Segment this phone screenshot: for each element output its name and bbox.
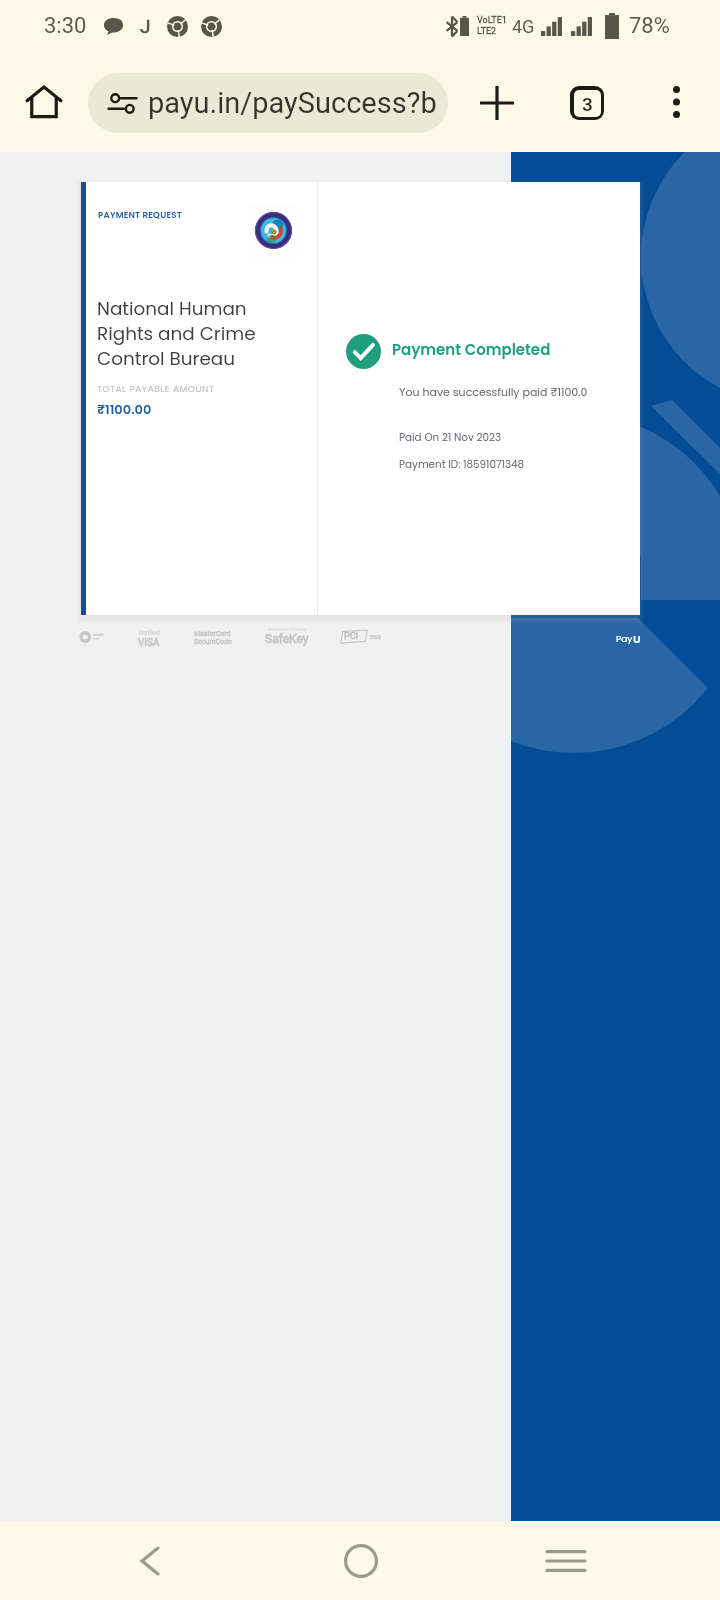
staticText: VISA xyxy=(138,637,160,649)
staticText: U xyxy=(633,631,641,646)
button[interactable]: New tab xyxy=(466,72,528,134)
button[interactable]: Home xyxy=(316,1521,406,1600)
staticText: PAYMENT REQUEST xyxy=(98,209,182,221)
staticText: Paid On 21 Nov 2023 xyxy=(399,430,502,445)
staticText: MasterCard xyxy=(194,630,231,638)
staticText: AMERICAN EXPRESS xyxy=(268,627,306,632)
staticText: PCI xyxy=(344,631,358,642)
button[interactable]: Open tabs xyxy=(556,72,618,134)
staticText: Payment ID: 18591071348 xyxy=(399,457,525,472)
staticText: You have successfully paid ₹1100.0 xyxy=(399,384,588,399)
staticText: National Human Rights and Crime Control … xyxy=(97,296,256,372)
button[interactable]: Recent apps xyxy=(521,1521,611,1600)
staticText: J xyxy=(140,15,151,37)
staticText: Payment Completed xyxy=(392,339,551,360)
staticText: 3:30 xyxy=(44,13,87,39)
staticText: 78% xyxy=(629,13,670,39)
staticText: SafeKey xyxy=(265,632,309,646)
button[interactable]: Home xyxy=(14,72,74,132)
button[interactable]: More options xyxy=(646,72,706,132)
staticText: 3 xyxy=(582,93,593,115)
staticText: Pay xyxy=(616,633,633,646)
staticText: DSS xyxy=(370,633,382,640)
staticText: VoLTE1 xyxy=(477,15,507,26)
staticText: Verified xyxy=(138,629,160,637)
staticText: SecureCode xyxy=(194,638,232,646)
staticText: payu.in/paySuccess?b xyxy=(148,86,437,120)
button[interactable]: Back xyxy=(105,1521,195,1600)
staticText: LTE2 xyxy=(477,26,497,37)
staticText: 4G xyxy=(512,16,535,37)
staticText: ₹1100.00 xyxy=(97,400,152,418)
button[interactable]: payu.in/paySuccess?b xyxy=(88,73,448,133)
staticText: TOTAL PAYABLE AMOUNT xyxy=(97,383,215,396)
